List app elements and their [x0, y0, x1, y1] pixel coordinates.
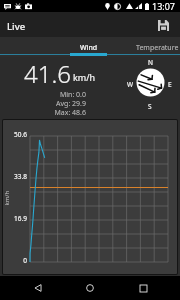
staticText: km/h: [73, 71, 96, 83]
staticText: 13:07: [152, 0, 176, 12]
staticText: W: [127, 80, 134, 89]
staticText: 0: [10, 256, 27, 265]
button[interactable]: Save: [153, 15, 173, 35]
staticText: Max: 48.6: [53, 108, 86, 118]
staticText: S: [148, 102, 152, 111]
staticText: 41.6: [24, 57, 71, 90]
staticText: E: [168, 80, 172, 89]
staticText: Wind: [80, 43, 98, 53]
staticText: 33.8: [10, 172, 27, 181]
staticText: 50.6: [10, 130, 27, 139]
staticText: Avg: 29.9: [53, 99, 86, 109]
staticText: Live: [7, 20, 26, 33]
staticText: N: [148, 58, 153, 67]
button[interactable]: Wind: [55, 37, 123, 57]
button[interactable]: Back: [23, 276, 53, 300]
button[interactable]: Recent apps: [128, 276, 158, 300]
staticText: km/h: [3, 190, 10, 205]
button[interactable]: Home: [75, 276, 105, 300]
staticText: Temperature: [136, 43, 179, 53]
staticText: 16.9: [10, 214, 27, 223]
staticText: Min: 0.0: [53, 90, 86, 100]
button[interactable]: Temperature: [123, 37, 180, 57]
